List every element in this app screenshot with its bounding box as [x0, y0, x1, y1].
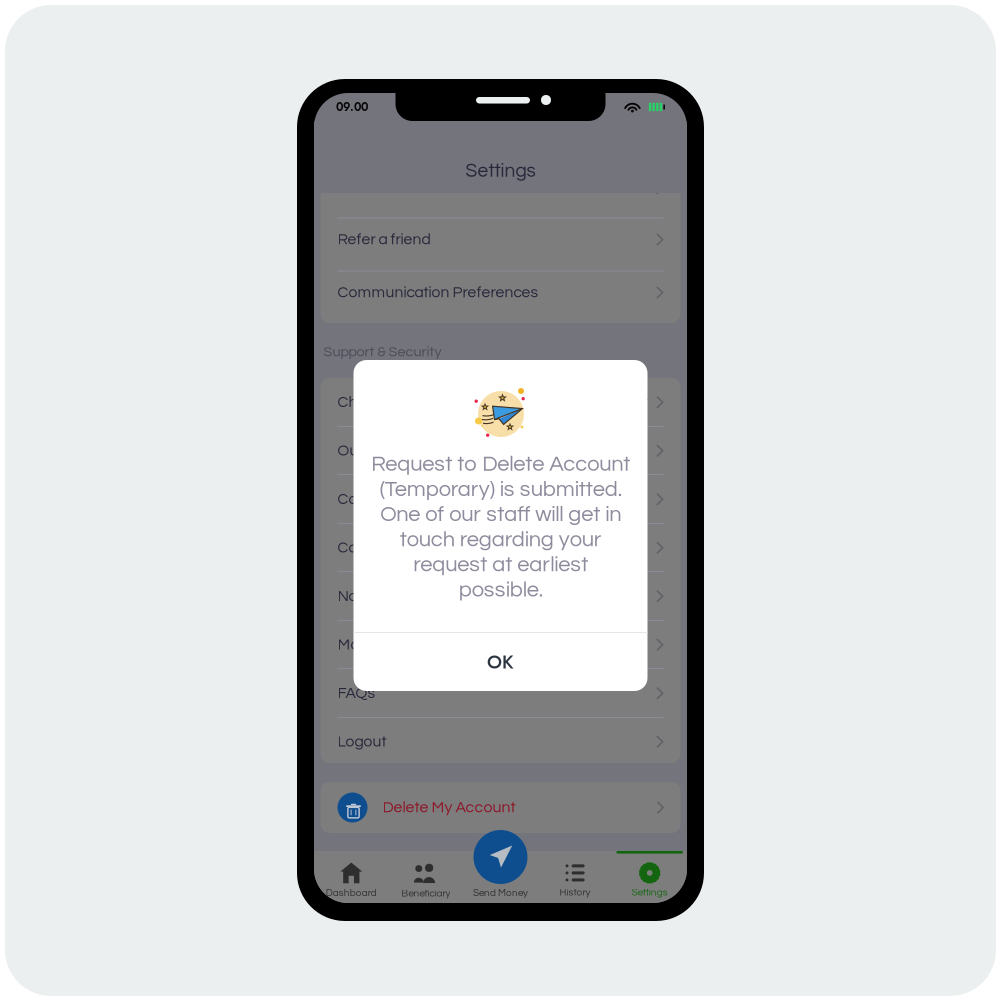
button[interactable]: Send Money [463, 858, 538, 902]
staticText: Send Money [473, 888, 528, 898]
staticText: History [560, 887, 591, 898]
staticText: Settings [632, 887, 668, 898]
button[interactable]: Contact Us [320, 475, 680, 523]
staticText: Settings [465, 161, 535, 181]
staticText: ID Documents [337, 180, 437, 196]
button[interactable]: Complaints [320, 523, 680, 572]
staticText: Communication Preferences [337, 284, 538, 301]
staticText: Contact Us [337, 491, 415, 507]
staticText: Request to Delete Account (Temporary) is… [371, 453, 630, 601]
staticText: Refer a friend [337, 231, 430, 248]
button[interactable]: Send Money [473, 830, 527, 884]
staticText: Our Branches [337, 443, 433, 459]
staticText: Dashboard [326, 888, 377, 898]
button[interactable]: History [538, 858, 612, 902]
staticText: Change Password [337, 394, 465, 410]
button[interactable]: Dashboard [314, 858, 389, 902]
button[interactable]: OK [353, 633, 647, 691]
staticText: Manage Devices [337, 637, 454, 653]
button[interactable]: FAQs [320, 669, 680, 717]
button[interactable]: Beneficiary [389, 858, 463, 902]
button[interactable]: Our Branches [320, 426, 680, 475]
staticText: Delete My Account [382, 799, 515, 816]
button[interactable]: Notifications [320, 572, 680, 620]
staticText: Edit [622, 394, 648, 410]
button[interactable]: Change Password [320, 378, 680, 426]
button[interactable]: ID Documents [320, 164, 680, 212]
staticText: Notifications [337, 588, 424, 604]
staticText: Beneficiary [401, 888, 450, 899]
button[interactable]: Settings [612, 858, 687, 902]
button[interactable]: Manage Devices [320, 620, 680, 669]
button[interactable]: Delete My Account [320, 782, 680, 833]
staticText: Logout [337, 734, 386, 750]
staticText: FAQs [337, 685, 375, 701]
staticText: OK [487, 648, 514, 675]
staticText: Support & Security [323, 345, 441, 359]
staticText: Complaints [337, 540, 417, 556]
button[interactable]: Logout [320, 717, 680, 766]
staticText: 09.00 [336, 99, 368, 115]
button[interactable]: Communication Preferences [320, 266, 680, 319]
button[interactable]: Refer a friend [320, 213, 680, 266]
